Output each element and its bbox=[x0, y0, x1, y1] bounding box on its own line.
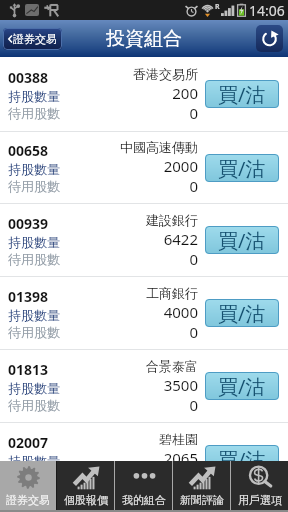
staticText: 待用股數 bbox=[8, 105, 60, 121]
staticText: 持股數量 bbox=[8, 161, 60, 177]
staticText: 3500 bbox=[163, 375, 198, 395]
staticText: 買/沽 bbox=[218, 446, 266, 473]
staticText: 證券交易 bbox=[13, 32, 57, 46]
button[interactable]: 個股報價 bbox=[57, 461, 114, 510]
button[interactable]: 我的組合 bbox=[115, 461, 172, 510]
staticText: 4000 bbox=[163, 302, 198, 322]
button[interactable]: 買/沽 bbox=[205, 154, 279, 182]
staticText: R bbox=[215, 2, 220, 12]
staticText: 新聞評論 bbox=[180, 493, 224, 507]
button[interactable]: 用戶選項 bbox=[231, 461, 288, 510]
button[interactable]: 買/沽 bbox=[205, 226, 279, 254]
staticText: 買/沽 bbox=[218, 373, 266, 400]
staticText: 2065 bbox=[163, 448, 198, 468]
staticText: 01398 bbox=[8, 287, 49, 306]
staticText: 證券交易 bbox=[6, 493, 50, 507]
staticText: 00939 bbox=[8, 214, 49, 233]
staticText: 待用股數 bbox=[8, 470, 60, 486]
staticText: 持股數量 bbox=[8, 307, 60, 323]
button[interactable]: 證券交易 bbox=[0, 461, 56, 510]
staticText: 投資組合 bbox=[106, 27, 182, 51]
staticText: 買/沽 bbox=[218, 155, 266, 182]
staticText: 6422 bbox=[163, 229, 198, 249]
button[interactable]: 00388 bbox=[0, 57, 288, 132]
button[interactable]: 00939 bbox=[0, 204, 288, 277]
staticText: 個股報價 bbox=[64, 493, 108, 507]
staticText: 14:06 bbox=[249, 1, 285, 20]
staticText: 2000 bbox=[163, 156, 198, 176]
staticText: 中國高速傳動 bbox=[120, 139, 198, 155]
staticText: 待用股數 bbox=[8, 251, 60, 267]
staticText: 我的組合 bbox=[122, 493, 166, 507]
button[interactable]: 新聞評論 bbox=[173, 461, 230, 510]
staticText: 0 bbox=[189, 176, 198, 196]
staticText: 待用股數 bbox=[8, 397, 60, 413]
button[interactable]: 買/沽 bbox=[205, 80, 279, 108]
staticText: 200 bbox=[172, 83, 198, 103]
button[interactable]: 02007 bbox=[0, 423, 288, 496]
staticText: 持股數量 bbox=[8, 234, 60, 250]
button[interactable]: 00658 bbox=[0, 132, 288, 204]
staticText: 待用股數 bbox=[8, 178, 60, 194]
staticText: 待用股數 bbox=[8, 324, 60, 340]
button[interactable]: 買/沽 bbox=[205, 299, 279, 327]
staticText: 碧桂園 bbox=[159, 431, 198, 447]
staticText: 持股數量 bbox=[8, 453, 60, 469]
button[interactable]: Refresh bbox=[256, 25, 283, 52]
staticText: 香港交易所 bbox=[133, 66, 198, 82]
staticText: 0 bbox=[189, 395, 198, 415]
staticText: 0 bbox=[189, 322, 198, 342]
button[interactable]: 證券交易 bbox=[3, 28, 62, 50]
button[interactable]: 買/沽 bbox=[205, 372, 279, 400]
staticText: 工商銀行 bbox=[146, 285, 198, 301]
staticText: 01813 bbox=[8, 360, 49, 379]
staticText: 持股數量 bbox=[8, 380, 60, 396]
staticText: 0 bbox=[189, 103, 198, 123]
staticText: 00658 bbox=[8, 141, 49, 160]
staticText: 0 bbox=[189, 249, 198, 269]
staticText: 建設銀行 bbox=[146, 212, 198, 228]
staticText: 買/沽 bbox=[218, 227, 266, 254]
staticText: 02007 bbox=[8, 433, 49, 452]
staticText: 0 bbox=[189, 468, 198, 488]
staticText: 合景泰富 bbox=[146, 358, 198, 374]
button[interactable]: 01813 bbox=[0, 350, 288, 423]
staticText: 買/沽 bbox=[218, 81, 266, 108]
staticText: 買/沽 bbox=[218, 300, 266, 327]
staticText: 00388 bbox=[8, 68, 49, 87]
staticText: 持股數量 bbox=[8, 88, 60, 104]
staticText: 用戶選項 bbox=[238, 493, 282, 507]
button[interactable]: 買/沽 bbox=[205, 445, 279, 473]
button[interactable]: 01398 bbox=[0, 277, 288, 350]
